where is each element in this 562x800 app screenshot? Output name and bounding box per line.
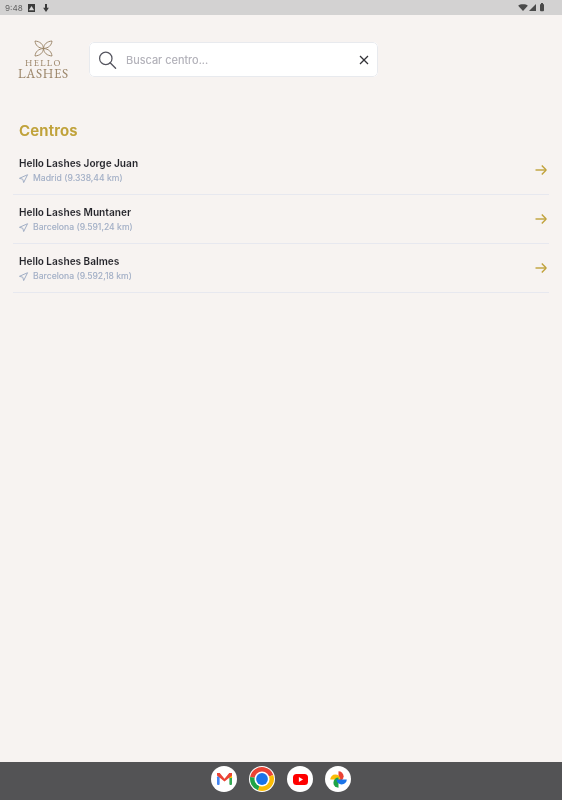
button[interactable]: Gmail	[211, 766, 237, 792]
button[interactable]: Open Hello Lashes Jorge Juan	[530, 159, 552, 181]
button[interactable]: Photos	[325, 766, 351, 792]
button[interactable]: Hello Lashes Muntaner	[0, 195, 562, 244]
staticText: Buscar centro...	[126, 53, 209, 66]
button[interactable]: Open Hello Lashes Balmes	[530, 257, 552, 279]
staticText: 9:48	[5, 3, 23, 13]
button[interactable]: Open Hello Lashes Muntaner	[530, 208, 552, 230]
button[interactable]: Chrome	[249, 766, 275, 792]
staticText: Centros	[19, 121, 78, 139]
staticText: Hello Lashes Balmes	[19, 255, 120, 267]
staticText: HELLO	[25, 57, 62, 69]
button[interactable]: Clear search	[356, 52, 372, 68]
button[interactable]: Hello Lashes Balmes	[0, 244, 562, 293]
staticText: Barcelona (9.592,18 km)	[33, 271, 132, 282]
button[interactable]: Hello Lashes Jorge Juan	[0, 146, 562, 195]
button[interactable]: YouTube	[287, 766, 313, 792]
staticText: Barcelona (9.591,24 km)	[33, 222, 133, 233]
staticText: Hello Lashes Jorge Juan	[19, 157, 139, 169]
staticText: Madrid (9.338,44 km)	[33, 173, 123, 184]
button[interactable]: Buscar centro...	[89, 42, 378, 77]
staticText: LASHES	[18, 65, 69, 82]
staticText: Hello Lashes Muntaner	[19, 206, 132, 218]
